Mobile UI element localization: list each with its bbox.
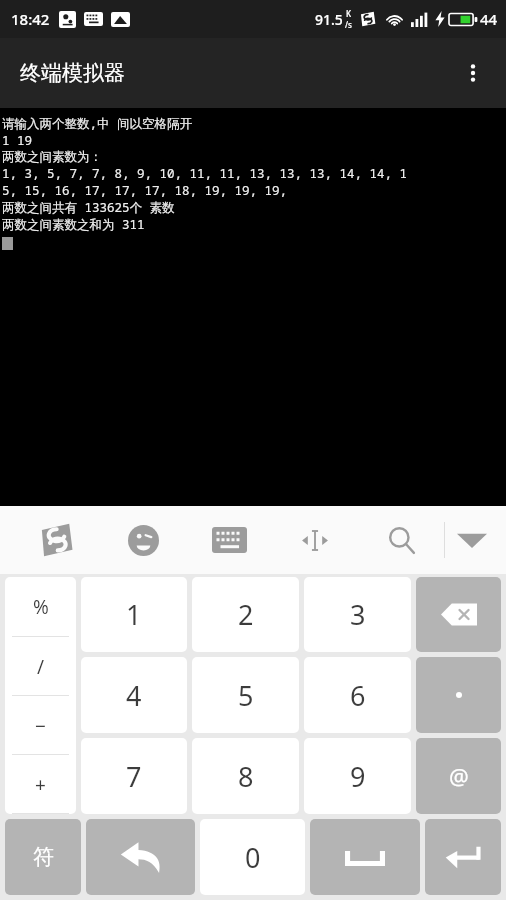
staticText: 6 [350, 677, 366, 714]
staticText: 91.5 [315, 10, 343, 29]
button[interactable]: 2 [192, 577, 299, 652]
button[interactable]: / [5, 637, 76, 696]
staticText: 1, 3, 5, 7, 7, 8, 9, 10, 11, 11, 13, 13,… [2, 165, 408, 182]
staticText: 7 [126, 758, 142, 795]
staticText: 请输入两个整数,中 间以空格隔开 [2, 115, 193, 132]
staticText: K [346, 8, 352, 19]
button[interactable]: Period [416, 657, 501, 733]
button[interactable]: Hide keyboard [445, 506, 498, 574]
button[interactable]: 6 [304, 657, 411, 733]
button[interactable]: 1 [81, 577, 187, 652]
staticText: 0 [245, 839, 261, 876]
staticText: 8 [238, 758, 254, 795]
staticText: 4 [126, 677, 142, 714]
button[interactable]: Backspace [416, 577, 501, 652]
staticText: / [37, 654, 45, 680]
staticText: 两数之间素数之和为 311 [2, 216, 145, 233]
button[interactable]: Sogou input [14, 506, 100, 574]
staticText: 终端模拟器 [20, 60, 125, 86]
button[interactable]: Move cursor [272, 506, 358, 574]
button[interactable]: Emoji [100, 506, 186, 574]
staticText: 两数之间共有 133625个 素数 [2, 199, 175, 216]
staticText: 5, 15, 16, 17, 17, 17, 18, 19, 19, 19, [2, 182, 288, 199]
staticText: − [35, 713, 46, 739]
staticText: 5 [238, 677, 254, 714]
staticText: 2 [238, 596, 254, 633]
button[interactable]: 3 [304, 577, 411, 652]
staticText: 1 [126, 596, 142, 633]
staticText: /s [345, 19, 352, 30]
staticText: 两数之间素数为： [2, 149, 102, 165]
staticText: + [35, 772, 46, 798]
staticText: @ [449, 761, 469, 791]
staticText: 3 [350, 596, 366, 633]
button[interactable]: − [5, 696, 76, 755]
button[interactable]: Enter [425, 819, 501, 895]
button[interactable]: Space [310, 819, 420, 895]
button[interactable]: Search [358, 506, 444, 574]
button[interactable]: Keyboard layout [186, 506, 272, 574]
button[interactable]: Switch language [86, 819, 195, 895]
button[interactable]: 4 [81, 657, 187, 733]
button[interactable]: 5 [192, 657, 299, 733]
button[interactable]: % [5, 577, 76, 637]
button[interactable]: More options [449, 49, 497, 97]
button[interactable]: 7 [81, 738, 187, 814]
staticText: 1 19 [2, 132, 33, 149]
button[interactable]: 9 [304, 738, 411, 814]
button[interactable]: 0 [200, 819, 305, 895]
staticText: % [33, 594, 49, 620]
staticText: 9 [350, 758, 366, 795]
staticText: 18:42 [11, 9, 50, 29]
button[interactable]: + [5, 755, 76, 814]
button[interactable]: 8 [192, 738, 299, 814]
button[interactable]: Symbols [5, 819, 81, 895]
button[interactable]: @ [416, 738, 501, 814]
staticText: 44 [480, 9, 498, 29]
staticText: 符 [33, 844, 54, 870]
